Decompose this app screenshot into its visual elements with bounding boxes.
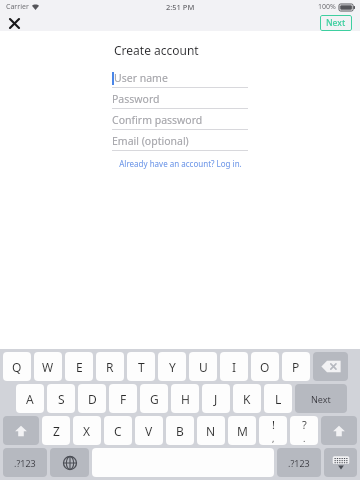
button[interactable]: N [197, 416, 225, 445]
button[interactable]: Next [320, 15, 352, 31]
staticText: S [58, 391, 65, 407]
button[interactable]: L [264, 384, 292, 413]
button[interactable]: Confirm password [112, 110, 248, 129]
staticText: Create account [114, 42, 199, 58]
button[interactable]: ! [259, 416, 287, 445]
staticText: Password [112, 92, 160, 106]
button[interactable]: Shift [3, 416, 39, 445]
staticText: Y [169, 359, 176, 375]
button[interactable]: C [104, 416, 132, 445]
staticText: T [138, 359, 145, 375]
button[interactable]: U [189, 352, 217, 381]
staticText: R [106, 359, 114, 375]
staticText: Z [53, 423, 60, 439]
staticText: Email (optional) [112, 134, 189, 148]
button[interactable]: Shift [321, 416, 357, 445]
button[interactable]: E [65, 352, 93, 381]
staticText: X [83, 423, 91, 439]
staticText: E [76, 359, 83, 375]
staticText: 100% [318, 2, 336, 12]
button[interactable]: Y [158, 352, 186, 381]
staticText: F [120, 391, 127, 407]
button[interactable]: Change keyboard language [50, 448, 89, 477]
staticText: ! [272, 417, 275, 432]
staticText: H [181, 391, 190, 407]
staticText: .?123 [14, 457, 36, 469]
staticText: G [150, 391, 159, 407]
button[interactable]: X [73, 416, 101, 445]
staticText: , [272, 432, 275, 444]
button[interactable]: ? [290, 416, 318, 445]
button[interactable]: R [96, 352, 124, 381]
staticText: N [206, 423, 216, 439]
staticText: User name [114, 71, 168, 85]
button[interactable]: User name [112, 68, 248, 87]
button[interactable]: B [166, 416, 194, 445]
button[interactable]: Close [6, 15, 22, 31]
staticText: D [88, 391, 97, 407]
button[interactable]: Email (optional) [112, 131, 248, 150]
button[interactable]: O [251, 352, 279, 381]
button[interactable]: W [34, 352, 62, 381]
button[interactable]: T [127, 352, 155, 381]
button[interactable]: Z [42, 416, 70, 445]
staticText: J [214, 391, 218, 407]
staticText: W [42, 359, 54, 375]
staticText: . [303, 432, 306, 444]
staticText: A [26, 391, 34, 407]
button[interactable]: Hide keyboard [324, 448, 357, 477]
staticText: M [237, 423, 248, 439]
button[interactable]: Backspace [313, 352, 348, 381]
button[interactable]: Next [295, 384, 347, 413]
staticText: K [243, 391, 251, 407]
button[interactable]: G [140, 384, 168, 413]
button[interactable]: P [282, 352, 310, 381]
staticText: B [176, 423, 184, 439]
button[interactable]: Already have an account? Log in. [112, 158, 248, 169]
button[interactable]: A [16, 384, 44, 413]
staticText: Next [326, 17, 346, 29]
staticText: Already have an account? Log in. [119, 158, 242, 169]
button[interactable]: M [228, 416, 256, 445]
button[interactable]: K [233, 384, 261, 413]
button[interactable]: Q [3, 352, 31, 381]
staticText: Carrier [6, 2, 29, 12]
staticText: C [114, 423, 122, 439]
button[interactable]: S [47, 384, 75, 413]
button[interactable]: D [78, 384, 106, 413]
staticText: O [260, 359, 270, 375]
button[interactable]: .?123 [3, 448, 47, 477]
button[interactable]: .?123 [277, 448, 321, 477]
button[interactable]: F [109, 384, 137, 413]
button[interactable]: Password [112, 89, 248, 108]
staticText: U [199, 359, 208, 375]
staticText: L [275, 391, 282, 407]
staticText: 2:51 PM [166, 2, 195, 12]
button[interactable]: J [202, 384, 230, 413]
staticText: V [145, 423, 153, 439]
staticText: Confirm password [112, 113, 203, 127]
staticText: .?123 [288, 457, 310, 469]
staticText: I [232, 359, 237, 375]
button[interactable]: I [220, 352, 248, 381]
button[interactable]: V [135, 416, 163, 445]
staticText: Q [12, 359, 22, 375]
button[interactable]: H [171, 384, 199, 413]
staticText: ? [302, 417, 307, 432]
staticText: Next [311, 393, 331, 405]
staticText: P [292, 359, 300, 375]
